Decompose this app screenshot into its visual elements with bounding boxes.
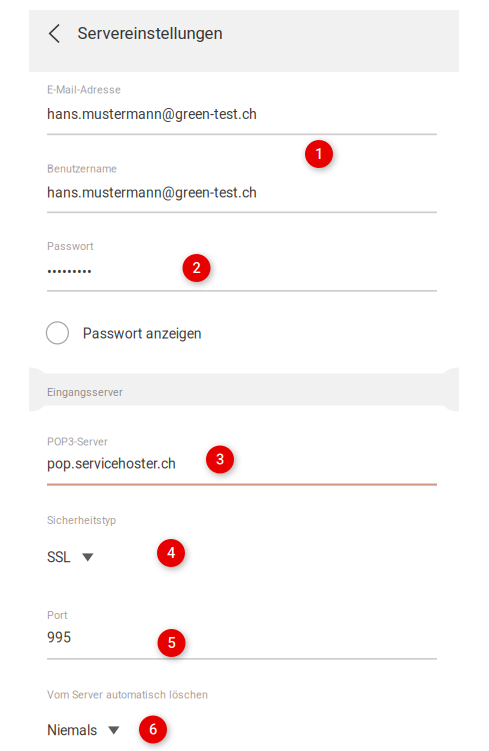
staticText: E-Mail-Adresse xyxy=(47,83,121,96)
staticText: Vom Server automatisch löschen xyxy=(47,688,208,701)
staticText: Passwort anzeigen xyxy=(83,325,202,342)
button[interactable]: SSL xyxy=(47,546,187,568)
staticText: 995 xyxy=(47,629,71,646)
staticText: pop.servicehoster.ch xyxy=(47,455,176,472)
staticText: hans.mustermann@green-test.ch xyxy=(47,106,257,122)
staticText: 2 xyxy=(192,259,200,277)
staticText: Servereinstellungen xyxy=(77,23,222,43)
button[interactable]: Niemals xyxy=(47,719,207,741)
staticText: 5 xyxy=(167,634,175,652)
staticText: SSL xyxy=(47,549,71,566)
staticText: Passwort xyxy=(47,240,93,252)
staticText: Benutzername xyxy=(47,162,117,175)
staticText: Sicherheitstyp xyxy=(47,514,116,526)
staticText: Niemals xyxy=(47,722,97,739)
staticText: hans.mustermann@green-test.ch xyxy=(47,184,257,201)
staticText: POP3-Server xyxy=(47,435,108,448)
staticText: 3 xyxy=(216,451,224,468)
button[interactable]: Servereinstellungen xyxy=(29,10,459,72)
staticText: ••••••••• xyxy=(47,264,92,280)
staticText: 1 xyxy=(315,145,323,163)
staticText: 6 xyxy=(149,721,157,738)
staticText: 4 xyxy=(167,544,175,562)
staticText: Eingangsserver xyxy=(47,386,123,398)
staticText: Port xyxy=(47,609,67,621)
button[interactable]: Passwort anzeigen xyxy=(45,315,305,355)
